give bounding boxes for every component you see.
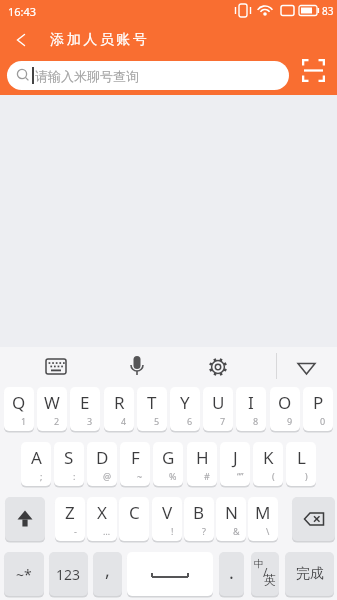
button[interactable]: Q [4,387,34,431]
staticText: H [196,446,209,469]
button[interactable]: O [270,387,300,431]
staticText: ! [171,525,174,537]
staticText: E [80,391,90,414]
button[interactable]: A [21,442,51,486]
button[interactable] [290,350,323,382]
button[interactable]: 完成 [285,552,334,596]
button[interactable] [121,350,153,382]
staticText: V [162,501,173,524]
staticText: Y [180,391,190,414]
button[interactable]: 123 [49,552,88,596]
staticText: A [31,446,42,469]
button[interactable] [292,497,335,541]
button[interactable]: S [54,442,84,486]
button[interactable]: . [219,552,244,596]
button[interactable]: G [153,442,183,486]
button[interactable]: J [220,442,250,486]
button[interactable]: T [137,387,167,431]
button[interactable]: C [119,497,149,541]
staticText: ~* [16,565,32,584]
staticText: G [162,446,175,469]
staticText: J [233,446,238,469]
button[interactable]: B [184,497,214,541]
button[interactable]: X [87,497,117,541]
staticText: 1 [21,415,27,427]
staticText: 5 [154,415,160,427]
staticText: D [96,446,109,469]
button[interactable]: Y [170,387,200,431]
button[interactable]: M [248,497,278,541]
button[interactable]: K [253,442,283,486]
staticText: 8 [253,415,259,427]
button[interactable]: 中 [251,552,279,596]
staticText: 83 [322,4,334,18]
staticText: ? [202,525,206,537]
button[interactable] [6,26,34,54]
staticText: 英 [264,572,276,587]
staticText: N [225,501,238,524]
staticText: Z [65,501,75,524]
button[interactable]: Z [55,497,85,541]
staticText: B [193,501,205,524]
staticText: S [64,446,74,469]
staticText: 16:43 [8,4,37,19]
staticText: 3 [87,415,93,427]
button[interactable]: V [152,497,182,541]
staticText: M [255,501,271,524]
button[interactable]: R [104,387,134,431]
button[interactable]: D [87,442,117,486]
staticText: Q [12,391,26,414]
staticText: … [103,525,111,537]
staticText: X [97,501,107,524]
staticText: 2 [54,415,60,427]
button[interactable] [202,350,234,382]
button[interactable]: ~* [4,552,44,596]
button[interactable]: , [93,552,122,596]
staticText: P [313,391,324,414]
button[interactable]: N [216,497,246,541]
button[interactable] [5,497,45,541]
staticText: - [74,525,77,537]
staticText: W [44,391,60,414]
staticText: 7 [220,415,226,427]
staticText: 完成 [296,565,324,583]
staticText: ) [305,470,308,482]
button[interactable]: F [120,442,150,486]
button[interactable]: E [70,387,100,431]
button[interactable]: L [286,442,316,486]
button[interactable] [127,552,213,596]
staticText: C [129,501,140,524]
staticText: 9 [287,415,293,427]
button[interactable]: I [236,387,266,431]
staticText: 0 [320,415,326,427]
staticText: ( [272,470,275,482]
staticText: F [131,446,140,469]
staticText: 123 [56,565,81,584]
button[interactable]: W [37,387,67,431]
staticText: 请输入米聊号查询 [35,68,139,84]
staticText: U [212,391,225,414]
staticText: 中 [254,557,264,570]
button[interactable]: U [203,387,233,431]
staticText: . [229,560,234,585]
staticText: T [147,391,157,414]
button[interactable] [40,350,72,382]
staticText: & [233,525,240,537]
button[interactable] [296,54,330,88]
staticText: O [278,391,292,414]
staticText: 6 [187,415,193,427]
staticText: @ [103,470,112,482]
staticText: % [169,470,177,482]
staticText: “” [237,470,244,482]
staticText: ~ [137,470,143,482]
staticText: , [105,558,110,583]
button[interactable]: P [303,387,333,431]
staticText: ; [40,470,43,482]
button[interactable]: 请输入米聊号查询 [7,61,289,90]
staticText: / [263,564,268,580]
staticText: R [114,391,125,414]
staticText: K [263,446,274,469]
button[interactable]: H [187,442,217,486]
staticText: # [204,470,210,482]
staticText: 添加人员账号 [49,31,148,49]
